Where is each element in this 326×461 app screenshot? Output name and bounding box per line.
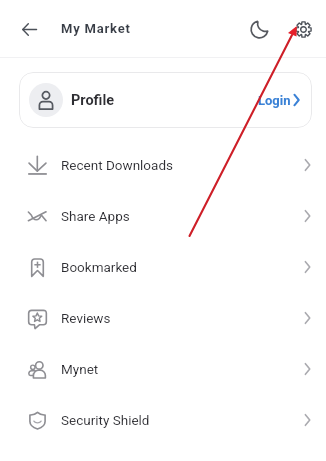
staticText: Bookmarked: [61, 259, 137, 275]
staticText: Recent Downloads: [61, 157, 173, 173]
staticText: Profile: [71, 92, 115, 109]
button[interactable]: Security Shield: [0, 394, 326, 445]
button[interactable]: Bookmarked: [0, 241, 326, 292]
staticText: Mynet: [61, 361, 99, 377]
button[interactable]: Back: [7, 7, 51, 51]
staticText: Login: [258, 93, 291, 108]
staticText: Share Apps: [61, 208, 130, 224]
staticText: Reviews: [61, 310, 111, 326]
staticText: My Market: [61, 21, 131, 36]
button[interactable]: Mynet: [0, 343, 326, 394]
button[interactable]: Reviews: [0, 292, 326, 343]
button[interactable]: Settings: [283, 9, 323, 49]
button[interactable]: Dark mode: [239, 9, 279, 49]
staticText: Security Shield: [61, 412, 150, 428]
button[interactable]: Recent Downloads: [0, 139, 326, 190]
button[interactable]: Share Apps: [0, 190, 326, 241]
button[interactable]: Profile: [19, 72, 312, 128]
